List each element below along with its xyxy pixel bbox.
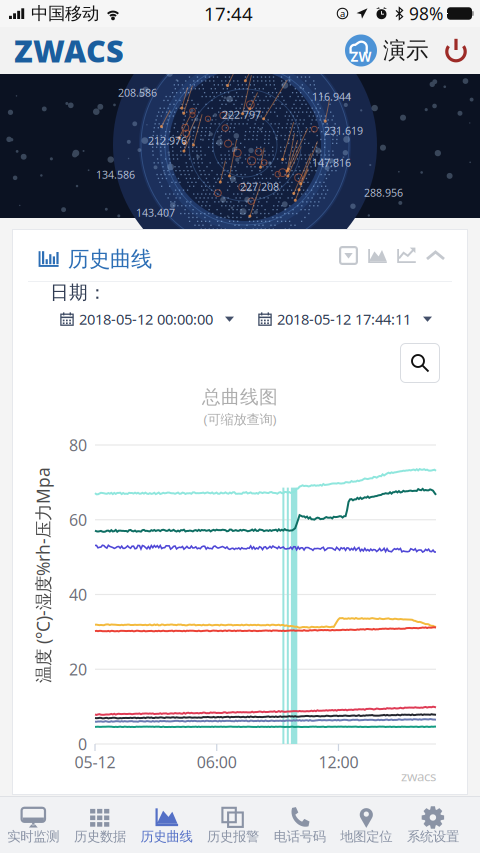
staticText: 134.586	[96, 167, 135, 182]
staticText: 0	[78, 733, 87, 755]
staticText: 实时监测	[7, 828, 59, 845]
staticText: 06:00	[197, 751, 237, 773]
staticText: zwacs	[401, 767, 436, 785]
staticText: 116.944	[312, 89, 351, 104]
staticText: 40	[69, 584, 87, 605]
button[interactable]: 2018-05-12 00:00:00	[60, 308, 234, 330]
staticText: 系统设置	[407, 828, 459, 845]
staticText: 12:00	[318, 751, 358, 773]
staticText: 总曲线图	[202, 385, 278, 408]
button[interactable]: 折线图	[395, 244, 418, 267]
button[interactable]: 收起	[424, 245, 447, 268]
button[interactable]: 2018-05-12 17:44:11	[258, 308, 432, 330]
staticText: 147.816	[312, 155, 351, 170]
staticText: 温度 (°C)-湿度%rh-压力Mpa	[0, 563, 151, 586]
staticText: 143.407	[136, 205, 175, 220]
staticText: 演示	[383, 37, 429, 64]
staticText: 中国移动	[31, 3, 99, 24]
staticText: 历史数据	[74, 828, 126, 845]
button[interactable]: 电源	[442, 36, 470, 64]
button[interactable]: 历史数据	[67, 796, 133, 852]
staticText: 2018-05-12 17:44:11	[277, 309, 411, 329]
staticText: 17:44	[204, 1, 253, 26]
staticText: 231.619	[324, 123, 363, 138]
button[interactable]: 面积图	[366, 244, 389, 267]
button[interactable]: 实时监测	[0, 796, 67, 852]
staticText: 60	[69, 509, 87, 530]
button[interactable]: 系统设置	[400, 796, 466, 852]
button[interactable]: 历史报警	[200, 796, 266, 852]
staticText: 地图定位	[340, 828, 392, 845]
staticText: 日期：	[50, 281, 107, 304]
staticText: 227.208	[240, 179, 279, 194]
staticText: (可缩放查询)	[203, 410, 276, 428]
staticText: 212.976	[148, 133, 187, 148]
staticText: 05-12	[74, 751, 115, 773]
staticText: ZW	[350, 48, 371, 65]
button[interactable]: 电话号码	[266, 796, 333, 852]
staticText: 20	[69, 659, 87, 680]
staticText: 288.956	[364, 185, 403, 200]
button[interactable]: ZW	[345, 30, 429, 70]
staticText: 电话号码	[274, 828, 326, 845]
staticText: 80	[69, 434, 87, 456]
staticText: 98%	[409, 2, 443, 25]
staticText: 2018-05-12 00:00:00	[79, 309, 213, 329]
staticText: 208.586	[118, 85, 157, 100]
button[interactable]: 查询	[400, 343, 440, 383]
staticText: 历史曲线	[68, 246, 152, 272]
button[interactable]: 地图定位	[333, 796, 400, 852]
button[interactable]: 下载	[337, 244, 360, 267]
staticText: 222.797	[222, 107, 261, 122]
staticText: a	[340, 7, 345, 20]
staticText: 历史报警	[207, 828, 259, 845]
button[interactable]: 历史曲线	[133, 796, 200, 852]
staticText: 历史曲线	[140, 828, 192, 845]
staticText: ZWACS	[14, 30, 124, 71]
